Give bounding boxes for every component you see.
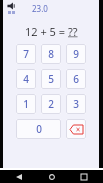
staticText: 12 + 5 = — [25, 24, 68, 39]
button[interactable]: 7 — [16, 44, 36, 64]
button[interactable]: Back — [12, 170, 26, 183]
staticText: 1 — [23, 97, 29, 111]
staticText: 6 — [73, 72, 79, 86]
staticText: 4 — [23, 72, 29, 86]
staticText: 7 — [23, 47, 29, 61]
staticText: 0 — [36, 122, 42, 136]
button[interactable]: 6 — [66, 69, 86, 89]
staticText: 9 — [73, 47, 79, 61]
button[interactable]: 1 — [16, 94, 36, 114]
staticText: 23.0 — [32, 3, 48, 14]
button[interactable]: Backspace — [66, 119, 86, 139]
button[interactable]: 2 — [41, 94, 61, 114]
button[interactable]: 5 — [41, 69, 61, 89]
button[interactable]: 3 — [66, 94, 86, 114]
button[interactable]: Sound — [5, 2, 18, 17]
button[interactable]: 8 — [41, 44, 61, 64]
staticText: ?? — [68, 24, 78, 39]
staticText: 8 — [48, 47, 54, 61]
button[interactable]: 0 — [16, 119, 61, 139]
button[interactable]: Home — [45, 170, 59, 183]
staticText: 2 — [48, 97, 54, 111]
button[interactable]: 9 — [66, 44, 86, 64]
staticText: 3 — [73, 97, 79, 111]
staticText: 5 — [48, 72, 54, 86]
button[interactable]: Recent apps — [77, 170, 91, 183]
button[interactable]: 4 — [16, 69, 36, 89]
